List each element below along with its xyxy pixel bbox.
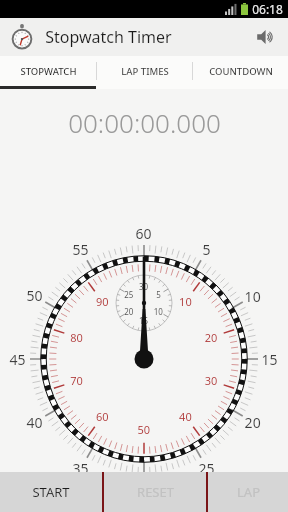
staticText: Stopwatch Timer bbox=[45, 26, 172, 48]
staticText: 06:18 bbox=[252, 1, 283, 17]
staticText: RESET bbox=[137, 483, 174, 501]
button[interactable]: RESET bbox=[104, 472, 206, 512]
staticText: 00:00:00.000 bbox=[68, 105, 221, 140]
button[interactable]: START bbox=[0, 472, 102, 512]
button[interactable]: STOPWATCH bbox=[0, 56, 96, 86]
staticText: LAP TIMES bbox=[121, 65, 169, 78]
button[interactable]: LAP TIMES bbox=[97, 56, 192, 86]
button[interactable]: COUNTDOWN bbox=[193, 56, 288, 86]
staticText: START bbox=[32, 483, 70, 501]
staticText: COUNTDOWN bbox=[209, 65, 273, 78]
staticText: LAP bbox=[237, 483, 260, 501]
staticText: STOPWATCH bbox=[20, 65, 77, 78]
button[interactable]: Sound bbox=[244, 18, 288, 56]
